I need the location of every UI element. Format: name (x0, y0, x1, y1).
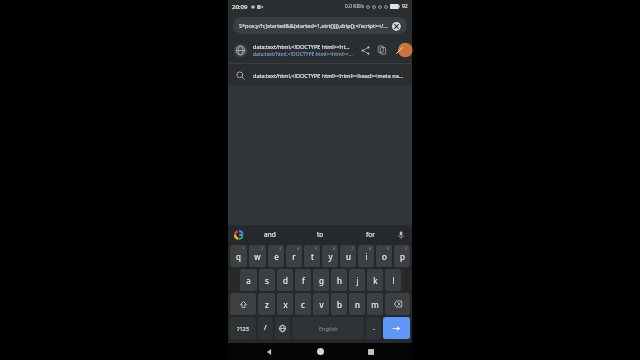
staticText: and (264, 230, 276, 239)
staticText: 7 (351, 246, 354, 251)
staticText: 3 (279, 246, 282, 251)
button[interactable]: to (295, 225, 345, 244)
staticText: data:text/html,<!DOCTYPE html><html><hea… (253, 51, 354, 58)
staticText: m (371, 299, 379, 310)
button[interactable] (385, 293, 410, 315)
staticText: 4 (297, 246, 300, 251)
staticText: 6 (333, 246, 336, 251)
button[interactable]: Voice input (395, 229, 407, 241)
button[interactable]: Home (310, 343, 330, 360)
staticText: c (301, 299, 305, 310)
button[interactable]: Copy (375, 43, 389, 57)
button[interactable]: r (286, 245, 302, 267)
staticText: data:text/html,<!DOCTYPE html><html... (253, 43, 354, 50)
button[interactable] (275, 317, 290, 339)
button[interactable]: w (249, 245, 266, 267)
staticText: j (356, 275, 359, 286)
staticText: 2 (261, 246, 264, 251)
staticText: data:text/html,<!DOCTYPE html><html><hea… (253, 72, 404, 79)
button[interactable]: c (295, 293, 311, 315)
button[interactable]: . (366, 317, 381, 339)
button[interactable]: x (277, 293, 293, 315)
staticText: d (283, 275, 288, 286)
staticText: f (302, 275, 305, 286)
button[interactable]: data:text/html,<!DOCTYPE html><html... (228, 37, 412, 63)
button[interactable]: English (292, 317, 364, 339)
button[interactable]: a (240, 269, 257, 291)
button[interactable]: f (295, 269, 311, 291)
button[interactable]: v (313, 293, 329, 315)
staticText: i (365, 251, 368, 262)
button[interactable] (230, 293, 256, 315)
button[interactable]: z (258, 293, 275, 315)
button[interactable]: b (331, 293, 347, 315)
staticText: 0 (405, 246, 408, 251)
button[interactable]: t (304, 245, 320, 267)
staticText: b (337, 299, 342, 310)
staticText: h (337, 275, 342, 286)
staticText: / (264, 323, 267, 333)
button[interactable]: u (340, 245, 356, 267)
staticText: 5 (315, 246, 318, 251)
button[interactable]: Enter (383, 317, 410, 339)
button[interactable]: l (385, 269, 401, 291)
staticText: u (346, 251, 351, 262)
button[interactable]: q (230, 245, 247, 267)
button[interactable]: data:text/html,<!DOCTYPE html><html><hea… (228, 64, 412, 86)
staticText: w (254, 251, 261, 262)
staticText: . (373, 323, 375, 333)
staticText: S*pos:y/h;)started&&(started=1,strt())))… (239, 22, 388, 29)
staticText: s (265, 275, 269, 286)
button[interactable]: S*pos:y/h;)started&&(started=1,strt())))… (233, 17, 407, 34)
button[interactable]: for (345, 225, 395, 244)
button[interactable]: j (349, 269, 365, 291)
button[interactable]: e (268, 245, 284, 267)
button[interactable]: Google (233, 229, 244, 240)
button[interactable]: o (376, 245, 392, 267)
button[interactable]: y (322, 245, 338, 267)
staticText: y (328, 251, 333, 262)
staticText: ?123 (237, 325, 249, 332)
staticText: p (400, 251, 405, 262)
staticText: x (283, 299, 288, 310)
staticText: 20:09 (232, 3, 248, 11)
button[interactable]: m (367, 293, 383, 315)
button[interactable]: s (259, 269, 275, 291)
staticText: for (366, 230, 375, 239)
button[interactable]: Edit query (392, 43, 406, 57)
staticText: 0.0 KB/s (345, 3, 364, 10)
staticText: k (373, 275, 378, 286)
staticText: 92 (402, 3, 408, 10)
button[interactable]: d (277, 269, 293, 291)
staticText: 9 (387, 246, 390, 251)
staticText: q (236, 251, 241, 262)
button[interactable]: h (331, 269, 347, 291)
button[interactable]: and (244, 225, 295, 244)
staticText: z (265, 299, 269, 310)
button[interactable]: n (349, 293, 365, 315)
staticText: 1 (242, 246, 245, 251)
staticText: r (292, 251, 296, 262)
staticText: g (319, 275, 324, 286)
button[interactable]: / (258, 317, 273, 339)
staticText: to (317, 230, 324, 239)
button[interactable]: k (367, 269, 383, 291)
staticText: o (382, 251, 387, 262)
button[interactable]: p (394, 245, 410, 267)
staticText: t (311, 251, 314, 262)
staticText: e (274, 251, 279, 262)
button[interactable]: Recents (361, 343, 381, 360)
staticText: English (319, 325, 338, 332)
staticText: n (355, 299, 360, 310)
button[interactable]: Share (358, 43, 372, 57)
button[interactable]: Back (259, 343, 279, 360)
staticText: v (319, 299, 324, 310)
button[interactable]: i (358, 245, 374, 267)
button[interactable]: ?123 (230, 317, 256, 339)
staticText: a (246, 275, 251, 286)
button[interactable]: g (313, 269, 329, 291)
button[interactable]: Clear text (391, 21, 401, 31)
staticText: 8 (369, 246, 372, 251)
staticText: l (392, 275, 395, 286)
